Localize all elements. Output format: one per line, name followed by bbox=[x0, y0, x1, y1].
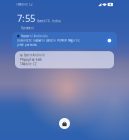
staticText: T-Mobile CZ bbox=[20, 62, 37, 66]
staticText: 7:55 bbox=[17, 12, 35, 24]
staticText: T-Mobile CZ bbox=[16, 3, 33, 6]
button[interactable]: Unlock bbox=[59, 118, 70, 129]
button[interactable]: System Android bbox=[15, 51, 114, 68]
button[interactable]: Nastavení Androidu bbox=[12, 32, 117, 49]
staticText: Dokončete nastavení zařízení HONOR Magic… bbox=[17, 39, 80, 42]
staticText: Nastavení Androidu bbox=[21, 34, 48, 38]
staticText: Oznámení bbox=[21, 26, 34, 30]
staticText: Připojit se k síti bbox=[20, 58, 42, 61]
staticText: System Android bbox=[24, 54, 45, 57]
staticText: ještě pár kroků bbox=[17, 43, 37, 47]
staticText: čtvrtek 16. ledna bbox=[37, 20, 60, 23]
